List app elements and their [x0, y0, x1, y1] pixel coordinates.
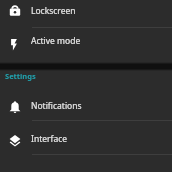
button[interactable]: Active mode: [0, 28, 172, 58]
staticText: Settings: [5, 71, 36, 81]
staticText: Active mode: [31, 35, 81, 47]
button[interactable]: Lockscreen: [0, 0, 172, 28]
staticText: Interface: [31, 133, 68, 145]
button[interactable]: Interface: [0, 122, 172, 156]
button[interactable]: Notifications: [0, 89, 172, 122]
staticText: Notifications: [31, 100, 82, 112]
staticText: Lockscreen: [31, 5, 76, 17]
